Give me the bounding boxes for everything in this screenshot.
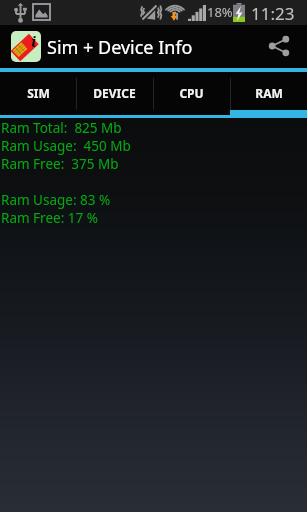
button[interactable]: CPU — [153, 72, 230, 113]
staticText: Sim + Device Info — [47, 35, 193, 60]
button[interactable]: RAM — [230, 72, 307, 113]
staticText: i — [31, 31, 37, 51]
staticText: Ram Usage: 450 Mb — [1, 137, 131, 155]
button[interactable]: SIM — [0, 72, 76, 113]
staticText: Ram Total: 825 Mb — [1, 119, 122, 137]
staticText: Ram Free: 375 Mb — [1, 155, 119, 173]
staticText: Ram Usage: 83 % — [1, 191, 111, 209]
staticText: 18% — [207, 3, 233, 21]
staticText: CPU — [179, 85, 204, 101]
staticText: Ram Free: 17 % — [1, 209, 98, 227]
button[interactable]: App info — [11, 31, 41, 62]
staticText: SIM — [27, 85, 50, 101]
button[interactable]: DEVICE — [76, 72, 153, 113]
staticText: 11:23 — [251, 2, 295, 25]
staticText: DEVICE — [93, 85, 136, 101]
button[interactable]: Share — [263, 30, 295, 62]
staticText: RAM — [255, 85, 283, 101]
